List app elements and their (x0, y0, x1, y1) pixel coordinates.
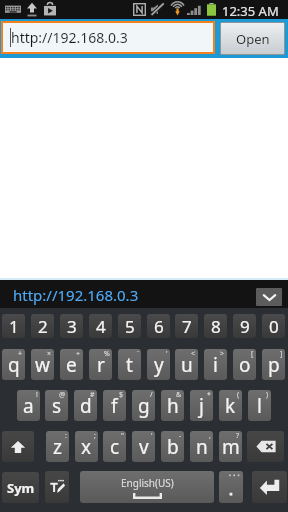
staticText: + (18, 349, 23, 359)
staticText: c (110, 434, 120, 460)
button[interactable]: c (103, 431, 126, 462)
button[interactable]: s (45, 390, 68, 421)
staticText: - (179, 431, 182, 441)
staticText: 12:35 AM (222, 2, 279, 20)
staticText: w (35, 352, 50, 378)
button[interactable]: z (46, 431, 69, 462)
staticText: $ (119, 390, 124, 400)
button[interactable]: Enter (252, 471, 287, 503)
button[interactable]: http://192.168.0.3 (3, 23, 213, 52)
staticText: English(US) (121, 476, 174, 490)
staticText: d (80, 393, 92, 419)
button[interactable]: l (248, 390, 271, 421)
staticText: ] (280, 349, 283, 359)
button[interactable]: w (31, 349, 54, 380)
button[interactable]: o (233, 349, 256, 380)
staticText: r (97, 352, 105, 378)
staticText: ' (151, 431, 153, 441)
button[interactable]: Space (80, 471, 214, 503)
button[interactable]: i (204, 349, 227, 380)
button[interactable]: y (147, 349, 170, 380)
button[interactable]: n (190, 431, 213, 462)
staticText: http://192.168.0.3 (11, 28, 128, 47)
staticText: s (52, 393, 62, 419)
staticText: o (239, 352, 251, 378)
staticText: > (220, 349, 225, 359)
staticText: % (104, 349, 110, 359)
button[interactable]: m (219, 431, 242, 462)
staticText: [ (251, 349, 254, 359)
button[interactable]: r (89, 349, 112, 380)
staticText: b (167, 434, 179, 460)
staticText: @ (59, 390, 66, 400)
staticText: t (126, 352, 133, 378)
button[interactable]: 9 (233, 314, 256, 338)
button[interactable]: a (17, 390, 40, 421)
button[interactable]: 7 (175, 314, 198, 338)
button[interactable]: d (74, 390, 97, 421)
staticText: 4 (96, 315, 106, 338)
button[interactable]: 3 (60, 314, 83, 338)
staticText: v (139, 434, 149, 460)
staticText: 9 (240, 315, 250, 338)
button[interactable]: u (175, 349, 198, 380)
staticText: ' (166, 349, 168, 359)
staticText: × (47, 349, 52, 359)
staticText: ÷ (76, 349, 81, 359)
button[interactable]: b (161, 431, 184, 462)
staticText: a (23, 393, 34, 419)
button[interactable]: 6 (147, 314, 170, 338)
button[interactable]: j (190, 390, 213, 421)
staticText: ; (94, 431, 96, 441)
button[interactable]: g (132, 390, 155, 421)
staticText: j (199, 393, 204, 419)
staticText: ` (137, 349, 139, 359)
staticText: u (181, 352, 193, 378)
button[interactable]: http://192.168.0.3 (13, 285, 139, 305)
staticText: 7 (182, 315, 192, 338)
staticText: 3 (67, 315, 77, 338)
staticText: h (167, 393, 179, 419)
button[interactable]: v (132, 431, 155, 462)
button[interactable]: h (161, 390, 184, 421)
button[interactable]: 4 (89, 314, 112, 338)
button[interactable]: Symbols (2, 472, 39, 503)
staticText: # (90, 390, 95, 400)
button[interactable]: Period (219, 471, 243, 503)
staticText: 5 (125, 315, 135, 338)
staticText: q (8, 352, 20, 378)
staticText: y (154, 352, 164, 378)
button[interactable]: 5 (118, 314, 141, 338)
button[interactable]: 0 (262, 314, 285, 338)
button[interactable]: p (262, 349, 285, 380)
button[interactable]: e (60, 349, 83, 380)
staticText: 6 (154, 315, 164, 338)
staticText: < (191, 349, 196, 359)
staticText: , (209, 431, 211, 441)
button[interactable]: Backspace (247, 431, 284, 462)
button[interactable]: 8 (204, 314, 227, 338)
button[interactable]: f (103, 390, 126, 421)
button[interactable]: Open (221, 23, 284, 54)
staticText: n (196, 434, 208, 460)
button[interactable]: Handwriting (45, 471, 69, 503)
button[interactable]: Hide keyboard (256, 288, 282, 306)
staticText: Sym (7, 479, 35, 497)
button[interactable]: Shift (2, 431, 34, 462)
staticText: ( (237, 390, 240, 400)
staticText: k (225, 393, 236, 419)
button[interactable]: t (118, 349, 141, 380)
staticText: & (176, 390, 182, 400)
staticText: m (222, 434, 240, 460)
button[interactable]: x (75, 431, 98, 462)
staticText: / (150, 390, 153, 400)
button[interactable]: q (2, 349, 25, 380)
button[interactable]: 1 (2, 314, 25, 338)
button[interactable]: k (219, 390, 242, 421)
staticText: i (213, 352, 218, 378)
staticText: f (111, 393, 118, 419)
button[interactable]: 2 (31, 314, 54, 338)
staticText: 2 (38, 315, 48, 338)
staticText: * (207, 390, 211, 400)
staticText: l (257, 393, 262, 419)
